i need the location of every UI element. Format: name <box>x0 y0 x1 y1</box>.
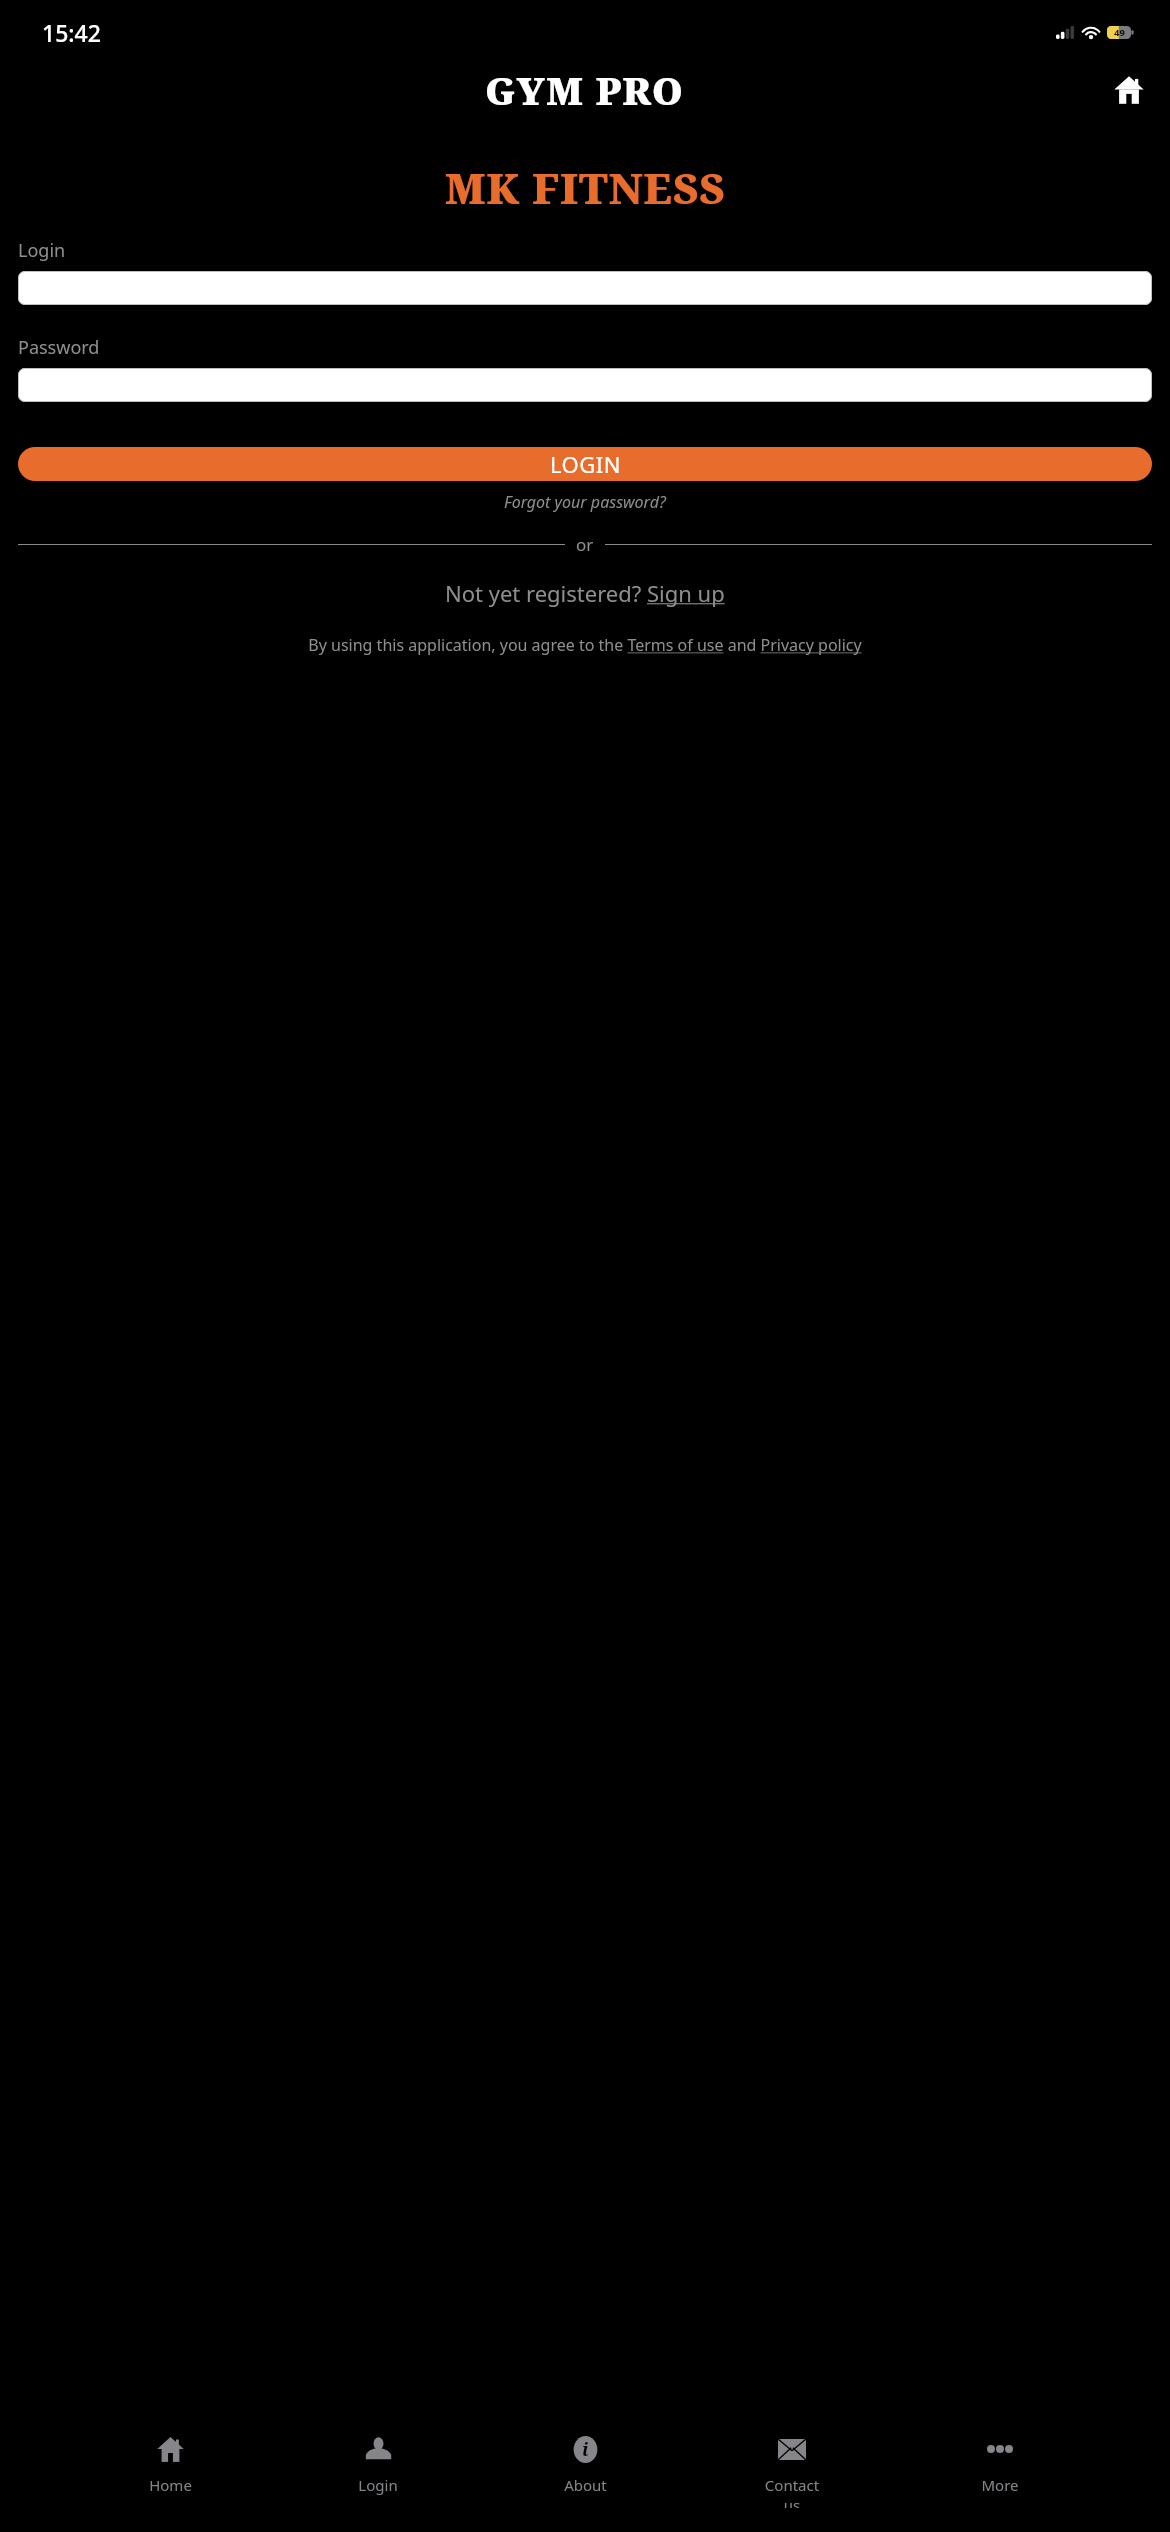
staticText: GYM PRO <box>485 64 685 116</box>
staticText: Contact us <box>755 2475 829 2508</box>
button[interactable]: Contact us <box>755 2428 829 2508</box>
button[interactable]: i <box>548 2428 622 2495</box>
button[interactable] <box>18 368 1152 402</box>
staticText: Home <box>149 2475 192 2495</box>
staticText: Login <box>18 238 66 263</box>
staticText: Sign up <box>647 578 725 608</box>
button[interactable]: LOGIN <box>18 447 1152 481</box>
button[interactable]: Forgot your password? <box>500 487 670 517</box>
staticText: Not yet registered? <box>445 578 647 608</box>
staticText: Login <box>358 2475 398 2495</box>
button[interactable]: More <box>963 2428 1037 2495</box>
button[interactable]: By using this application, you agree to … <box>18 634 1152 656</box>
staticText: i <box>582 2437 589 2462</box>
button[interactable]: Home <box>1108 69 1150 111</box>
staticText: 49 <box>1114 26 1125 39</box>
staticText: Password <box>18 335 100 360</box>
staticText: LOGIN <box>550 449 621 479</box>
button[interactable]: Login <box>341 2428 415 2495</box>
staticText: More <box>981 2475 1019 2495</box>
staticText: About <box>564 2475 607 2495</box>
staticText: 15:42 <box>42 17 101 48</box>
button[interactable] <box>18 271 1152 305</box>
staticText: MK FITNESS <box>445 159 726 216</box>
staticText: or <box>576 533 594 556</box>
button[interactable]: Not yet registered? <box>445 578 725 608</box>
button[interactable]: Home <box>133 2428 207 2495</box>
